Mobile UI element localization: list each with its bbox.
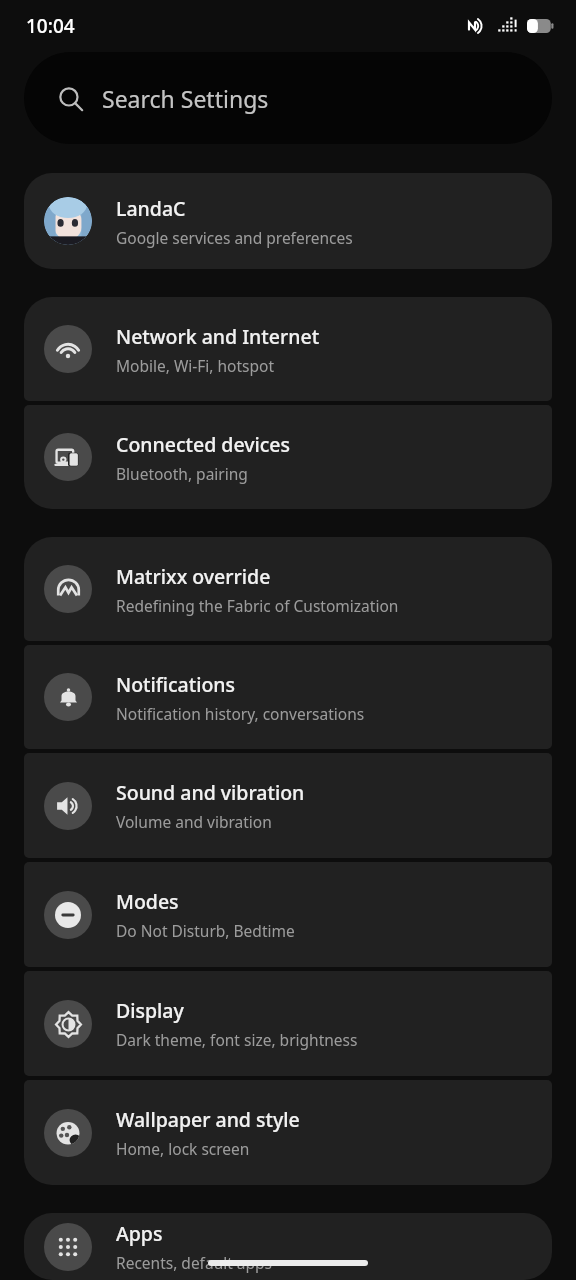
staticText: Bluetooth, pairing <box>116 463 248 484</box>
button[interactable]: Modes <box>24 862 552 967</box>
staticText: Notification history, conversations <box>116 703 365 724</box>
button[interactable]: LandaC <box>24 173 552 269</box>
staticText: Recents, default apps <box>116 1252 273 1273</box>
staticText: Redefining the Fabric of Customization <box>116 595 399 616</box>
staticText: 10:04 <box>26 13 75 39</box>
button[interactable]: Display <box>24 971 552 1076</box>
staticText: Home, lock screen <box>116 1138 250 1159</box>
staticText: Modes <box>116 888 179 915</box>
button[interactable]: Matrixx override <box>24 537 552 641</box>
button[interactable]: Apps <box>24 1213 552 1280</box>
staticText: Google services and preferences <box>116 227 353 248</box>
button[interactable]: Sound and vibration <box>24 753 552 858</box>
staticText: Mobile, Wi-Fi, hotspot <box>116 355 275 376</box>
staticText: Notifications <box>116 671 236 698</box>
staticText: LandaC <box>116 195 186 222</box>
staticText: Apps <box>116 1220 163 1247</box>
staticText: Matrixx override <box>116 563 271 590</box>
staticText: Wallpaper and style <box>116 1106 300 1133</box>
button[interactable]: Wallpaper and style <box>24 1080 552 1185</box>
staticText: Volume and vibration <box>116 811 272 832</box>
button[interactable]: Search Settings <box>24 52 552 144</box>
staticText: Do Not Disturb, Bedtime <box>116 920 295 941</box>
staticText: Connected devices <box>116 431 291 458</box>
staticText: Display <box>116 997 184 1024</box>
staticText: Sound and vibration <box>116 779 305 806</box>
button[interactable]: Connected devices <box>24 405 552 509</box>
staticText: Search Settings <box>102 83 269 114</box>
staticText: Network and Internet <box>116 323 320 350</box>
button[interactable]: Notifications <box>24 645 552 749</box>
button[interactable]: Network and Internet <box>24 297 552 401</box>
staticText: Dark theme, font size, brightness <box>116 1029 358 1050</box>
